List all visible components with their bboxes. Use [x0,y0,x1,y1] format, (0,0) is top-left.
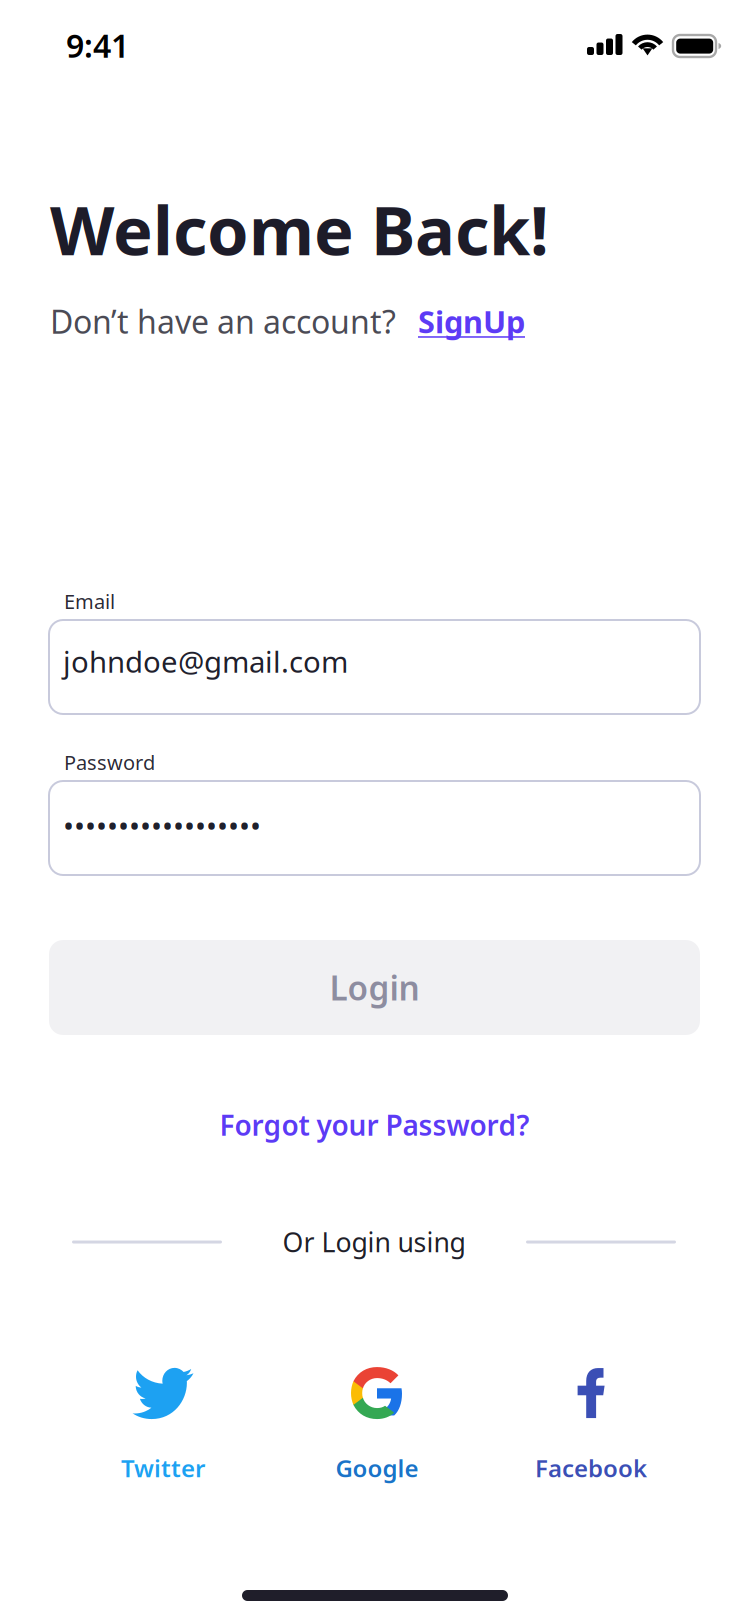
button[interactable]: Forgot your Password? [49,1105,700,1145]
button[interactable]: SignUp [396,301,525,342]
staticText: Welcome Back! [50,185,549,273]
button[interactable]: Google [270,1368,484,1483]
staticText: Facebook [535,1452,647,1484]
staticText: 9:41 [66,24,129,66]
staticText: Or Login using [282,1224,465,1260]
button[interactable]: Facebook [484,1368,698,1483]
staticText: Forgot your Password? [219,1106,529,1144]
button[interactable]: Email [49,588,700,714]
button[interactable]: Login [49,940,700,1035]
staticText: Login [329,965,419,1010]
staticText: Password [64,749,155,776]
staticText: johndoe@gmail.com [63,642,348,681]
button[interactable]: Password [49,749,700,875]
staticText: Twitter [121,1452,205,1484]
staticText: Email [64,588,115,615]
staticText: SignUp [418,301,525,342]
button[interactable]: Twitter [56,1368,270,1483]
staticText: •••••••••••••••••• [63,806,261,845]
staticText: Don’t have an account? [50,300,396,342]
staticText: Google [335,1452,418,1484]
